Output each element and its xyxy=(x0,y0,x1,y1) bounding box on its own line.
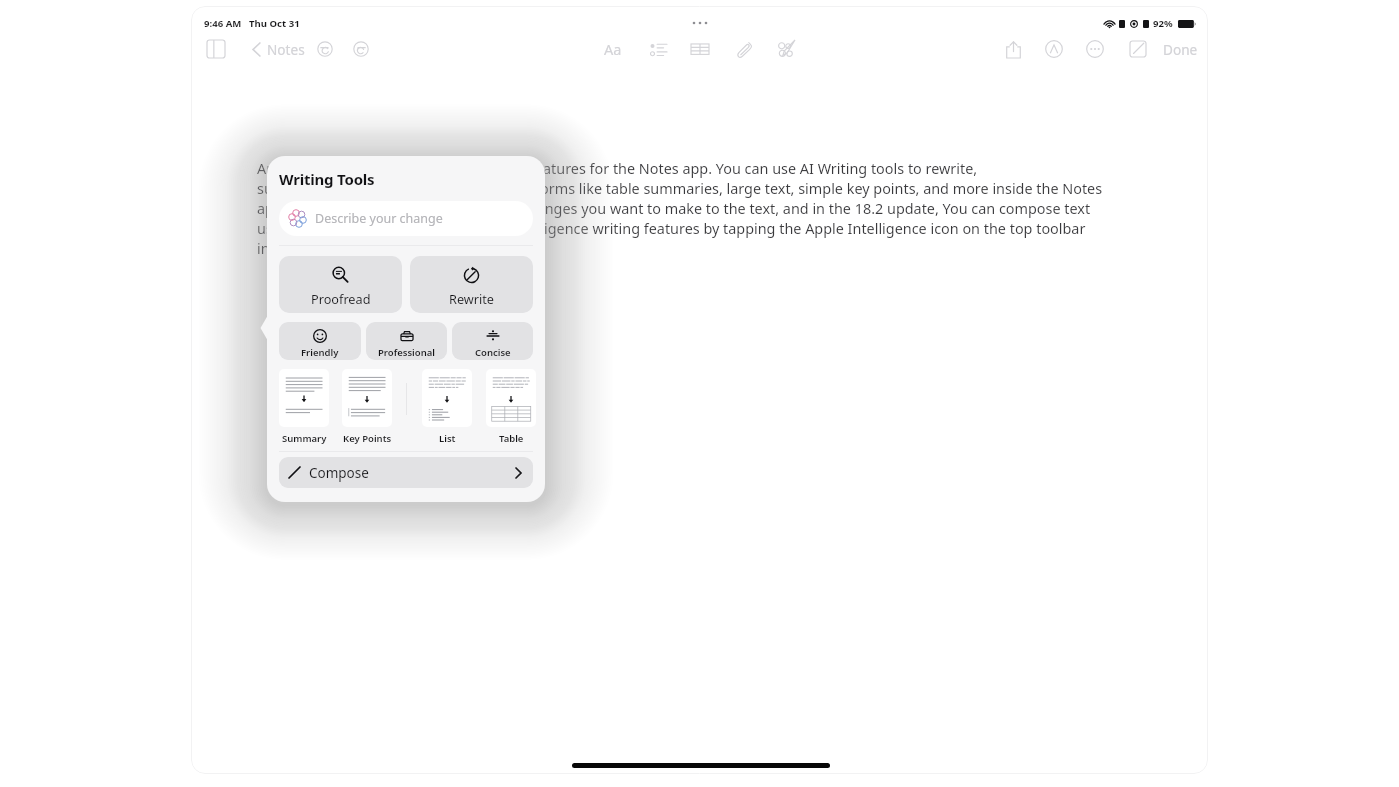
button[interactable]: Proofread xyxy=(279,256,402,313)
staticText: Done xyxy=(1163,40,1198,59)
button[interactable]: Back to Notes xyxy=(247,33,310,66)
staticText: Rewrite xyxy=(449,290,495,307)
staticText: Writing Tools xyxy=(279,169,375,189)
button[interactable]: Sidebar xyxy=(201,34,231,64)
staticText: 92% xyxy=(1153,17,1173,30)
staticText: summarize, or convert text into differen… xyxy=(257,179,1103,199)
staticText: Table xyxy=(499,432,524,445)
button[interactable]: New note xyxy=(1124,35,1152,63)
button[interactable]: Markup xyxy=(771,34,801,64)
button[interactable]: Undo xyxy=(311,35,339,63)
staticText: Key Points xyxy=(343,432,392,445)
staticText: Friendly xyxy=(301,346,339,359)
button[interactable]: Table xyxy=(486,369,536,445)
staticText: Compose xyxy=(309,464,369,482)
button[interactable]: Format xyxy=(601,32,625,66)
button[interactable]: Describe your change xyxy=(279,201,533,236)
staticText: Apple has introduced Apple Intelligence … xyxy=(257,159,978,179)
button[interactable]: Share xyxy=(999,35,1028,64)
staticText: Thu Oct 31 xyxy=(249,17,300,30)
button[interactable]: Compose xyxy=(279,457,533,488)
button[interactable]: List xyxy=(422,369,472,445)
staticText: Concise xyxy=(475,346,511,359)
staticText: Summary xyxy=(282,432,327,445)
staticText: Describe your change xyxy=(315,210,443,227)
button[interactable]: Redo xyxy=(347,35,375,63)
button[interactable]: Apple Intelligence xyxy=(1039,34,1069,64)
button[interactable]: Table xyxy=(685,34,715,64)
button[interactable]: Done xyxy=(1157,33,1204,66)
staticText: List xyxy=(439,432,456,445)
button[interactable]: Attach xyxy=(730,35,758,63)
button[interactable]: Rewrite xyxy=(410,256,533,313)
staticText: Aa xyxy=(604,39,622,59)
button[interactable]: Professional xyxy=(366,322,447,360)
staticText: Professional xyxy=(378,346,435,359)
staticText: using ChatGPT. You can access Apple Inte… xyxy=(257,219,1086,239)
button[interactable]: Checklist xyxy=(644,35,673,64)
staticText: Notes xyxy=(267,40,305,59)
staticText: 9:46 AM xyxy=(204,17,242,30)
button[interactable]: Concise xyxy=(452,322,533,360)
button[interactable]: More xyxy=(1080,34,1110,64)
button[interactable]: Friendly xyxy=(279,322,361,360)
staticText: in the Notes app. xyxy=(257,239,373,259)
staticText: Proofread xyxy=(311,290,371,307)
button[interactable]: Key Points xyxy=(342,369,392,445)
button[interactable]: Summary xyxy=(279,369,329,445)
staticText: app. You can also describe any specific … xyxy=(257,199,1091,219)
